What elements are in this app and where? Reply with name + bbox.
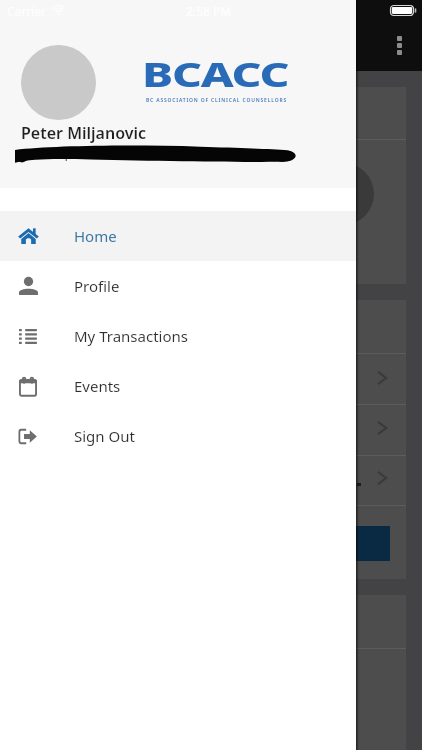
staticText: My Transactions <box>74 326 188 346</box>
staticText: BCACC <box>142 51 289 97</box>
button[interactable]: More options <box>388 28 410 62</box>
button[interactable]: Open item <box>6 403 406 453</box>
staticText: Home <box>74 226 117 246</box>
staticText: peter@peterdhsolutions.com <box>20 144 199 162</box>
button[interactable]: Profile <box>0 261 356 311</box>
button[interactable] <box>24 526 390 561</box>
button[interactable]: Home <box>0 211 356 261</box>
button[interactable]: Open item <box>6 453 406 503</box>
button[interactable]: My Transactions <box>0 311 356 361</box>
staticText: Peter Miljanovic <box>21 122 147 144</box>
staticText: BC ASSOCIATION OF CLINICAL COUNSELLORS <box>146 96 287 104</box>
staticText: Sign Out <box>74 426 135 446</box>
button[interactable]: Open item <box>6 353 406 403</box>
other: Battery <box>390 5 416 16</box>
staticText: Events <box>74 376 121 396</box>
staticText: Profile <box>74 276 120 296</box>
button[interactable]: Events <box>0 361 356 411</box>
button[interactable]: Sign Out <box>0 411 356 461</box>
